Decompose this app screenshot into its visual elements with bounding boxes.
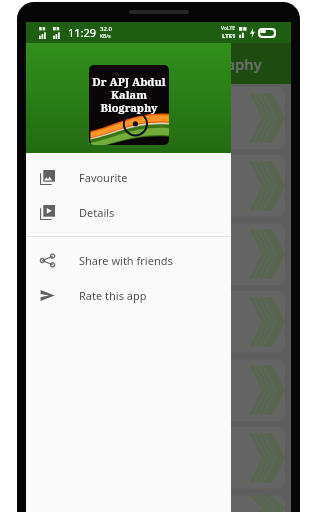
button[interactable]: जीवन परिचय — [32, 223, 285, 285]
button[interactable]: Favourite — [26, 160, 231, 195]
button[interactable]: जीवन परिचय — [32, 155, 285, 217]
other: Share with friends — [40, 253, 55, 268]
staticText: 11:29 — [68, 25, 97, 40]
staticText: Dr APJ Abdul Kalam Biography — [45, 54, 262, 74]
button[interactable]: जीवन परिचय — [32, 291, 285, 353]
button[interactable]: Share with friends — [26, 243, 231, 278]
staticText: जीवन परिचय — [48, 177, 111, 195]
staticText: Rate this app — [79, 288, 147, 303]
button[interactable]: Details — [26, 195, 231, 230]
staticText: Details — [79, 205, 115, 220]
other: Details — [40, 205, 55, 220]
button[interactable]: जीवन परिचय — [32, 427, 285, 489]
staticText: Favourite — [79, 170, 128, 185]
button[interactable]: कलाम का जन्म और बचपन — [32, 359, 285, 421]
other: Favourite — [40, 170, 55, 185]
button[interactable]: Rate this app — [26, 278, 231, 313]
staticText: Share with friends — [79, 253, 173, 268]
staticText: LTE1 — [222, 32, 236, 40]
staticText: जीवन परिचय — [48, 245, 111, 263]
staticText: VoLTE — [221, 25, 236, 32]
staticText: KB/s — [100, 33, 111, 40]
button[interactable]: जीवन परिचय — [32, 495, 285, 512]
staticText: 32.0 — [100, 25, 112, 33]
staticText: जीवन परिचय — [48, 109, 111, 127]
button[interactable]: जीवन परिचय — [32, 87, 285, 149]
staticText: Dr APJ Abdul Kalam Biography — [92, 74, 166, 115]
other: Rate this app — [40, 288, 55, 303]
